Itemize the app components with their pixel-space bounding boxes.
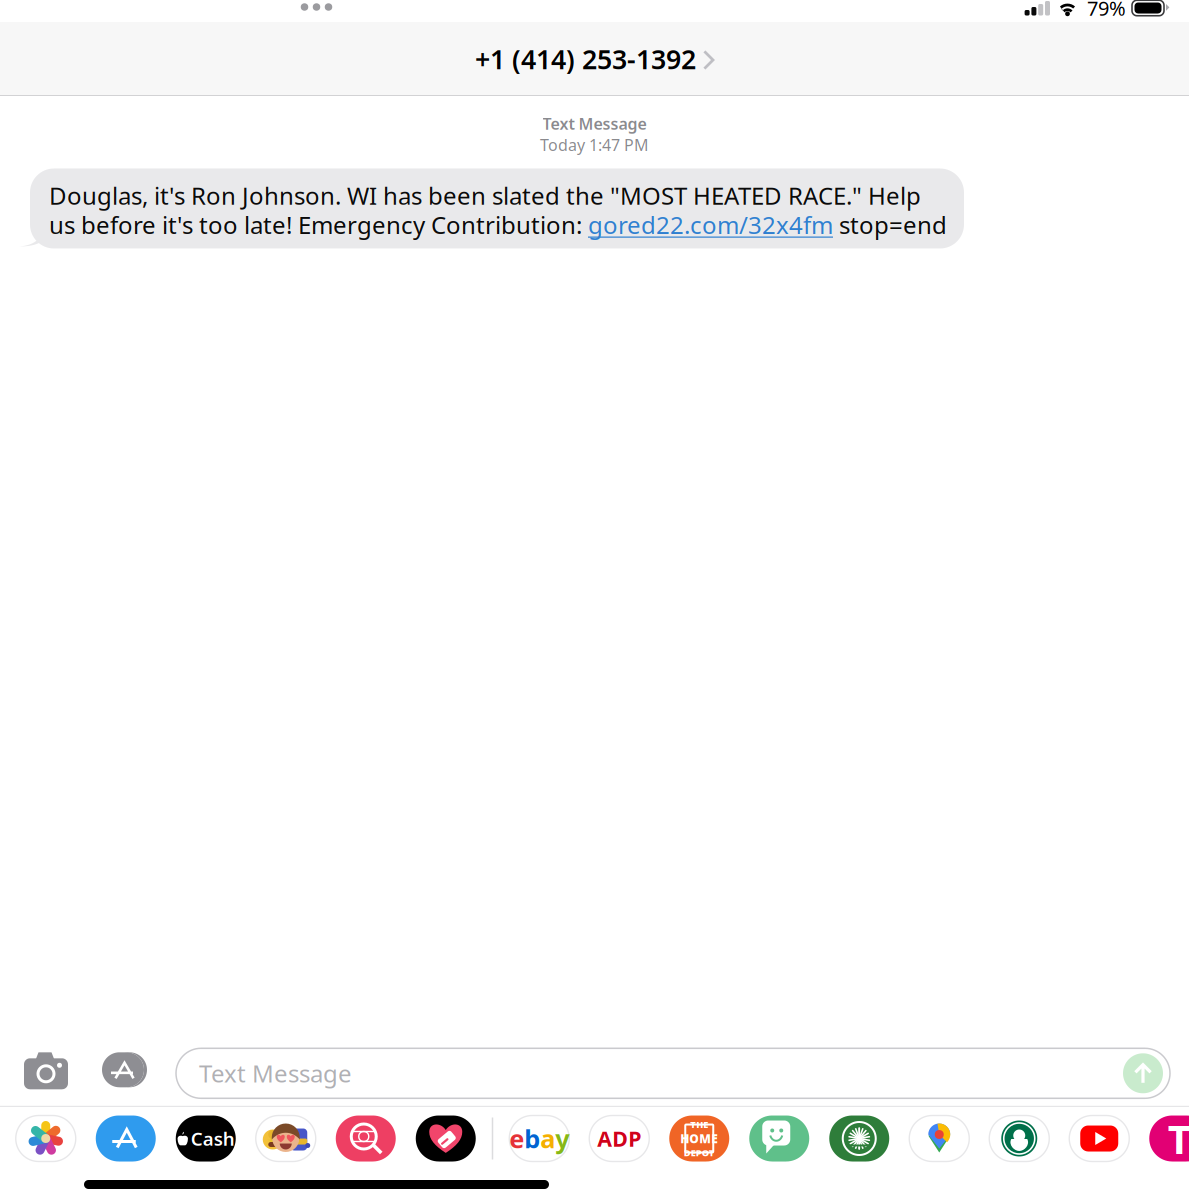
button[interactable]: Apple Cash [166,1109,246,1167]
button[interactable]: Sunburst [819,1109,899,1167]
button[interactable]: Apple Card [406,1109,486,1167]
staticText: Today 1:47 PM [540,134,649,155]
staticText: ADP [597,1124,641,1153]
staticText: Cash [191,1126,235,1151]
button[interactable]: T-Mobile [1139,1109,1189,1167]
button[interactable]: Google Maps [899,1109,979,1167]
staticText: b [524,1122,540,1155]
button[interactable]: Camera [24,1044,72,1100]
staticText: Text Message [199,1057,352,1089]
button[interactable]: App Store [86,1109,166,1167]
staticText: ★ [267,1134,277,1146]
staticText: 79% [1087,0,1126,21]
button[interactable]: Send [1120,1048,1166,1098]
button[interactable]: Starbucks [979,1109,1059,1167]
staticText: y [555,1122,569,1155]
button[interactable]: Home Depot [659,1109,739,1167]
button[interactable]: Photos [6,1109,86,1167]
staticText: +1 (414) 253-1392 [475,41,696,77]
button[interactable]: ADP [579,1109,659,1167]
staticText: Text Message [542,113,646,134]
button[interactable]: eBay [499,1109,579,1167]
staticText: e [509,1122,524,1155]
button[interactable]: Memoji [246,1109,326,1167]
staticText: HOME [680,1130,718,1146]
button[interactable]: Images [326,1109,406,1167]
staticText: a [540,1122,555,1155]
staticText: T [1168,1112,1189,1165]
button[interactable]: +1 (414) 253-1392 [461,35,728,83]
button[interactable]: Messages [739,1109,819,1167]
button[interactable]: YouTube [1059,1109,1139,1167]
staticText: THE [690,1118,708,1130]
staticText: Douglas, it's Ron Johnson. WI has been s… [49,179,947,241]
button[interactable]: Apps [102,1044,150,1100]
staticText: DEPOT [684,1146,715,1159]
